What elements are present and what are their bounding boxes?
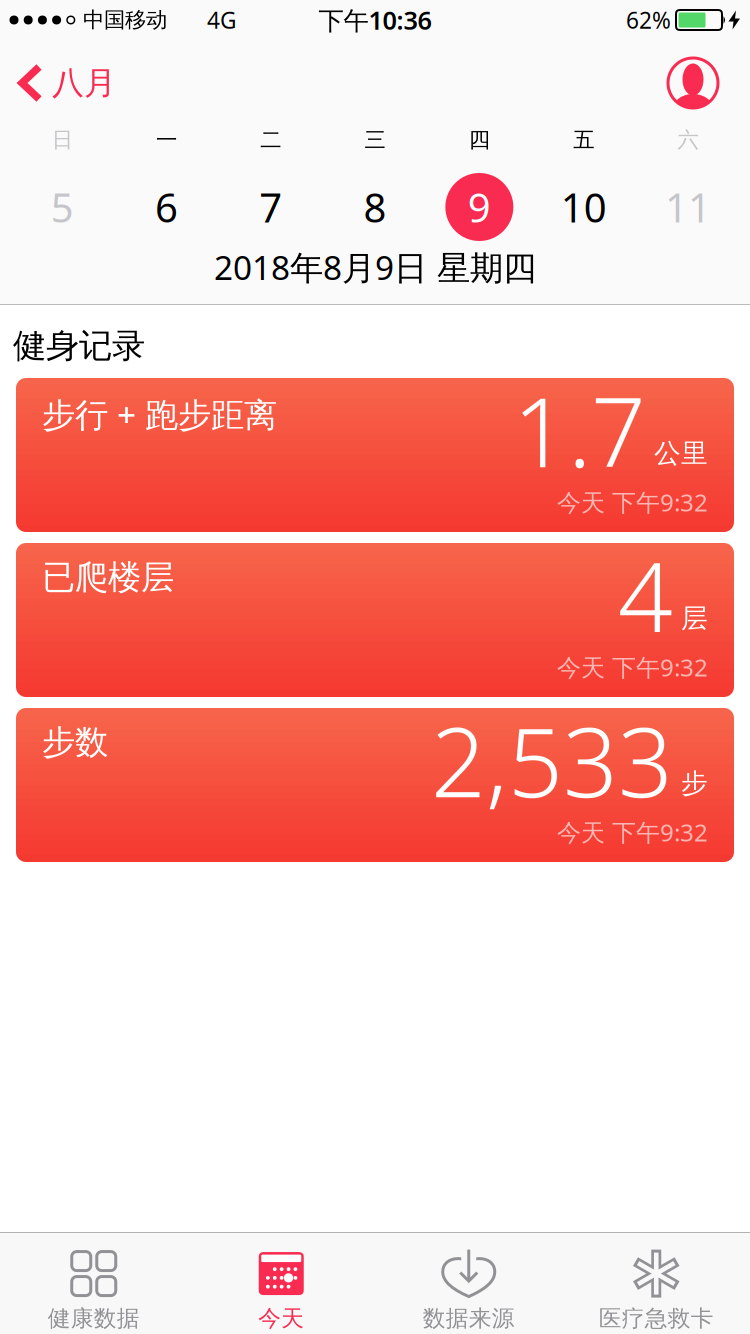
staticText: 四 <box>469 127 490 153</box>
staticText: 下午10:36 <box>318 3 431 37</box>
button[interactable]: 11 <box>636 159 740 255</box>
staticText: 八月 <box>52 63 116 103</box>
staticText: 今天 <box>258 1305 304 1332</box>
staticText: 中国移动 <box>83 7 167 33</box>
staticText: 健康数据 <box>48 1305 140 1332</box>
button[interactable]: 今天 <box>187 1233 375 1334</box>
staticText: 日 <box>52 127 73 153</box>
button[interactable]: 医疗急救卡 <box>562 1233 750 1334</box>
button[interactable]: 健康数据 <box>0 1233 187 1334</box>
staticText: 步 <box>681 767 708 800</box>
button[interactable]: 步数 <box>16 708 734 862</box>
button[interactable]: 8 <box>323 159 427 255</box>
staticText: 层 <box>681 602 708 635</box>
staticText: 今天 下午9:32 <box>557 816 708 848</box>
staticText: 2,533 <box>431 696 673 824</box>
staticText: 8 <box>363 180 386 233</box>
staticText: 健身记录 <box>13 325 145 366</box>
button[interactable]: 10 <box>531 159 636 255</box>
staticText: 已爬楼层 <box>42 557 174 598</box>
staticText: 三 <box>364 127 385 153</box>
staticText: 步数 <box>42 722 108 763</box>
staticText: 五 <box>573 127 594 153</box>
button[interactable]: 5 <box>10 159 114 255</box>
staticText: 4G <box>207 5 237 35</box>
button[interactable]: 7 <box>219 159 323 255</box>
staticText: 公里 <box>654 437 708 470</box>
staticText: 6 <box>155 180 178 233</box>
staticText: 今天 下午9:32 <box>557 486 708 518</box>
staticText: 62% <box>626 5 671 35</box>
staticText: 数据来源 <box>423 1305 515 1332</box>
button[interactable]: 9 <box>427 159 531 255</box>
staticText: 5 <box>51 180 74 233</box>
button[interactable]: 已爬楼层 <box>16 543 734 697</box>
staticText: 1.7 <box>513 366 646 494</box>
button[interactable]: 步行 + 跑步距离 <box>16 378 734 532</box>
staticText: 11 <box>665 180 711 233</box>
staticText: 一 <box>156 127 177 153</box>
staticText: 2018年8月9日 星期四 <box>214 245 536 289</box>
staticText: 9 <box>468 180 491 233</box>
staticText: 步行 + 跑步距离 <box>42 392 277 436</box>
button[interactable]: 个人资料 <box>668 58 718 108</box>
button[interactable]: 返回八月 <box>17 63 116 103</box>
staticText: 7 <box>259 180 282 233</box>
staticText: 4 <box>618 531 673 659</box>
button[interactable]: 6 <box>114 159 219 255</box>
staticText: 医疗急救卡 <box>599 1305 714 1332</box>
staticText: 10 <box>561 180 607 233</box>
staticText: 今天 下午9:32 <box>557 651 708 683</box>
button[interactable]: 数据来源 <box>375 1233 562 1334</box>
staticText: 二 <box>260 127 281 153</box>
staticText: 六 <box>677 127 698 153</box>
